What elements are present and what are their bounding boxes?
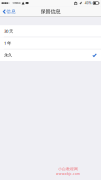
staticText: 信息	[6, 9, 16, 14]
staticText: www.xbjc.com	[56, 172, 80, 176]
staticText: 永久	[4, 52, 12, 58]
staticText: 1 年	[4, 40, 11, 46]
button[interactable]: 30 天	[0, 25, 101, 37]
button[interactable]: 1 年	[0, 37, 101, 49]
staticText: 小白教程网	[58, 167, 78, 171]
button[interactable]: 信息	[0, 7, 16, 16]
staticText: 30 天	[4, 28, 13, 34]
staticText: 中国移动	[12, 2, 20, 4]
staticText: 40%	[85, 1, 92, 5]
staticText: 保留信息	[40, 8, 60, 15]
button[interactable]: 永久	[0, 49, 101, 61]
